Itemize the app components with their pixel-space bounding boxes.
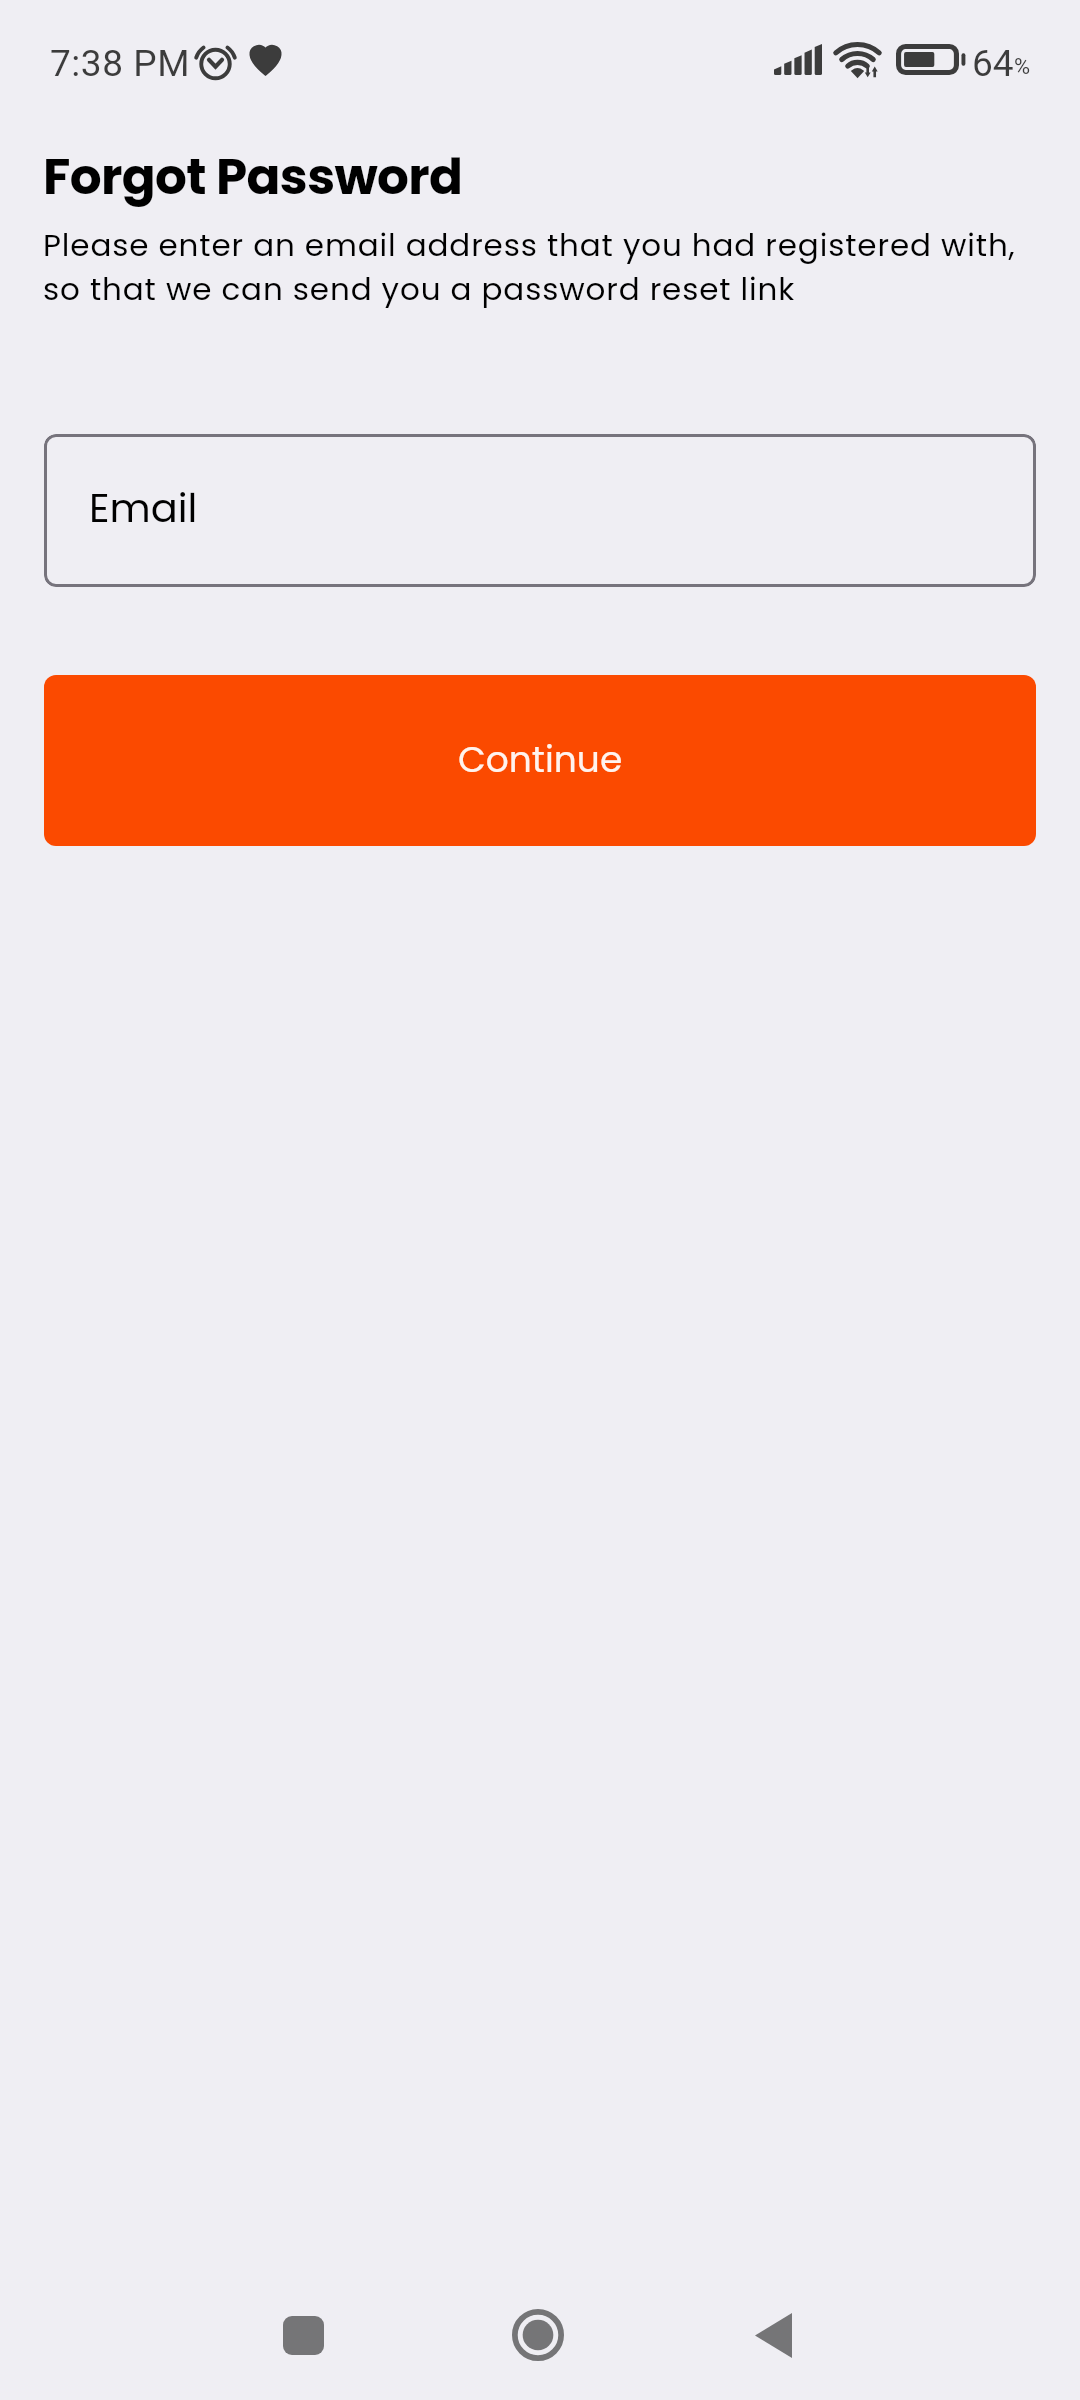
- staticText: Email: [89, 481, 198, 537]
- button[interactable]: Recents: [243, 2275, 363, 2395]
- staticText: 7:38 PM: [50, 41, 191, 85]
- button[interactable]: Continue: [44, 675, 1036, 846]
- staticText: Please enter an email address that you h…: [43, 224, 1035, 312]
- button[interactable]: Home: [478, 2275, 598, 2395]
- staticText: 64: [972, 41, 1014, 85]
- staticText: Forgot Password: [43, 143, 463, 213]
- staticText: %: [1014, 53, 1031, 79]
- staticText: Continue: [458, 735, 623, 785]
- button[interactable]: Email: [44, 434, 1036, 587]
- button[interactable]: Back: [713, 2275, 833, 2395]
